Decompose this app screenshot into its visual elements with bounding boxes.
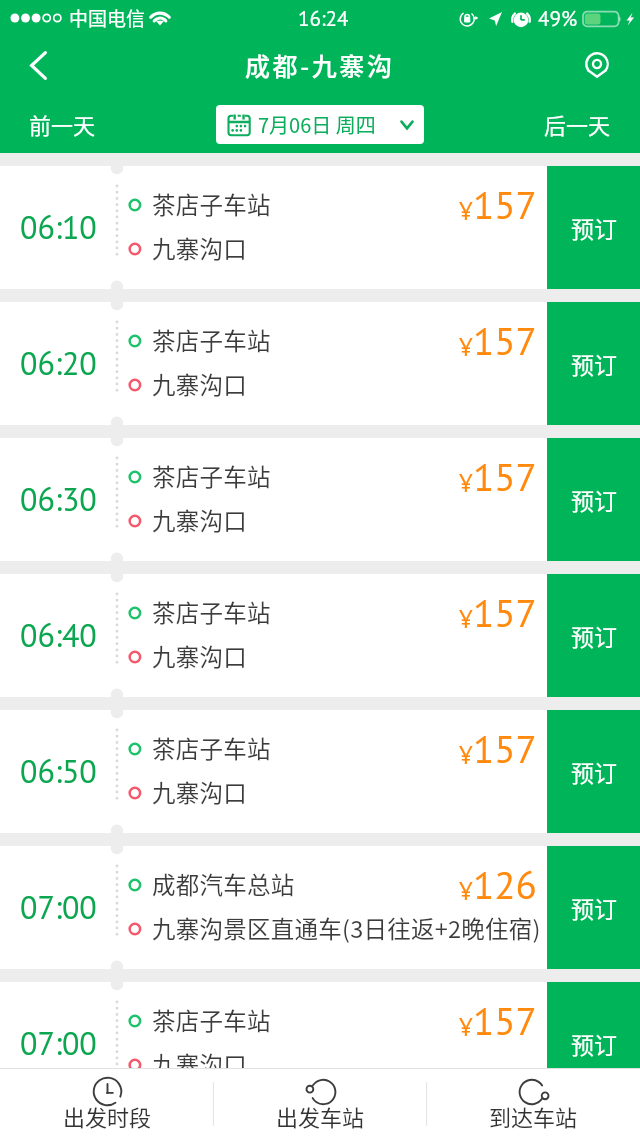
button[interactable]: 07:00 [0, 846, 640, 969]
staticText: 九寨沟口 [152, 503, 247, 537]
staticText: 九寨沟口 [152, 639, 247, 673]
staticText: 157 [473, 179, 537, 229]
button[interactable]: 7月06日 周四 [216, 105, 424, 144]
staticText: ¥ [459, 195, 473, 227]
button[interactable]: 07:00 [0, 982, 640, 1068]
staticText: 06:40 [20, 614, 97, 655]
staticText: 九寨沟口 [152, 367, 247, 401]
staticText: 157 [473, 995, 537, 1045]
staticText: 预订 [571, 483, 617, 516]
staticText: 九寨沟口 [152, 231, 247, 265]
button[interactable]: 出发车站 [214, 1069, 427, 1138]
staticText: 九寨沟口 [152, 775, 247, 809]
staticText: ¥ [459, 739, 473, 771]
staticText: 茶店子车站 [152, 187, 271, 221]
staticText: 后一天 [544, 108, 611, 140]
staticText: 出发时段 [63, 1100, 152, 1132]
staticText: ¥ [459, 1011, 473, 1043]
staticText: 茶店子车站 [152, 323, 271, 357]
staticText: 07:00 [20, 1022, 97, 1063]
staticText: 到达车站 [489, 1100, 578, 1132]
staticText: 预订 [571, 891, 617, 924]
staticText: 前一天 [29, 108, 96, 140]
staticText: 成都-九寨沟 [245, 47, 395, 83]
button[interactable]: 06:40 [0, 574, 640, 697]
button[interactable]: 预订 [547, 710, 640, 833]
staticText: ¥ [459, 331, 473, 363]
staticText: 06:20 [20, 342, 97, 383]
button[interactable]: 预订 [547, 982, 640, 1068]
button[interactable]: Map location [554, 36, 640, 94]
staticText: 06:30 [20, 478, 97, 519]
button[interactable]: 预订 [547, 574, 640, 697]
staticText: 16:24 [298, 5, 349, 32]
button[interactable]: 预订 [547, 166, 640, 289]
staticText: 157 [473, 587, 537, 637]
staticText: 06:10 [20, 206, 97, 247]
staticText: 预订 [571, 619, 617, 652]
staticText: 预订 [571, 347, 617, 380]
button[interactable]: 出发时段 [0, 1069, 214, 1138]
staticText: 茶店子车站 [152, 1003, 271, 1037]
staticText: 49% [538, 5, 578, 32]
staticText: 茶店子车站 [152, 459, 271, 493]
staticText: 06:50 [20, 750, 97, 791]
button[interactable]: 06:20 [0, 302, 640, 425]
staticText: 157 [473, 451, 537, 501]
button[interactable]: 到达车站 [427, 1069, 640, 1138]
button[interactable]: 06:10 [0, 166, 640, 289]
staticText: 126 [473, 859, 537, 909]
staticText: 预订 [571, 1027, 617, 1060]
button[interactable]: 06:30 [0, 438, 640, 561]
staticText: 7月06日 周四 [258, 110, 376, 139]
staticText: 茶店子车站 [152, 595, 271, 629]
staticText: 157 [473, 315, 537, 365]
button[interactable]: 预订 [547, 846, 640, 969]
staticText: 九寨沟景区直通车(3日往返+2晚住宿) [152, 911, 541, 945]
button[interactable]: 预订 [547, 438, 640, 561]
button[interactable]: Back [0, 36, 76, 94]
staticText: 预订 [571, 211, 617, 244]
staticText: ¥ [459, 467, 473, 499]
staticText: 成都汽车总站 [152, 867, 295, 901]
button[interactable]: 后一天 [515, 94, 640, 153]
staticText: 157 [473, 723, 537, 773]
button[interactable]: 预订 [547, 302, 640, 425]
staticText: 九寨沟口 [152, 1047, 247, 1068]
staticText: 预订 [571, 755, 617, 788]
button[interactable]: 前一天 [0, 94, 125, 153]
button[interactable]: 06:50 [0, 710, 640, 833]
staticText: 出发车站 [276, 1100, 365, 1132]
staticText: 茶店子车站 [152, 731, 271, 765]
staticText: ¥ [459, 875, 473, 907]
staticText: ¥ [459, 603, 473, 635]
staticText: 中国电信 [69, 4, 146, 32]
staticText: 07:00 [20, 886, 97, 927]
